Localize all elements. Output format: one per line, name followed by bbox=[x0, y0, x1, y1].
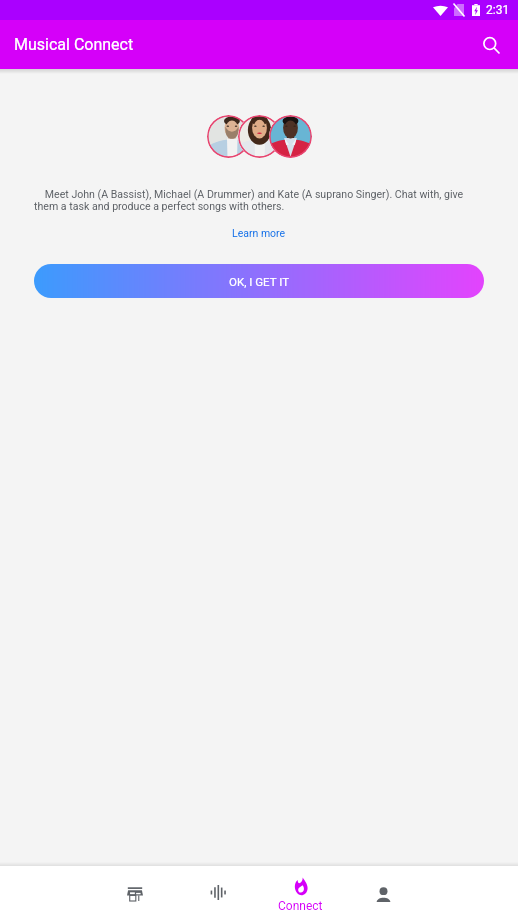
button[interactable]: Connect bbox=[259, 866, 342, 922]
button[interactable]: Profile bbox=[342, 866, 425, 922]
button[interactable]: Profile 2 bbox=[238, 115, 281, 158]
button[interactable]: OK, I GET IT bbox=[34, 264, 484, 298]
staticText: OK, I GET IT bbox=[229, 275, 290, 288]
staticText: 2:31 bbox=[486, 3, 510, 17]
button[interactable]: Store bbox=[93, 866, 176, 922]
staticText: Musical Connect bbox=[14, 35, 134, 54]
staticText: Learn more bbox=[232, 227, 286, 239]
button[interactable]: Profile 1 bbox=[207, 115, 250, 158]
button[interactable]: Search bbox=[471, 25, 511, 65]
staticText: Meet John (A Bassist), Michael (A Drumme… bbox=[34, 188, 478, 212]
button[interactable]: Profile 3 bbox=[269, 115, 312, 158]
staticText: Connect bbox=[278, 899, 323, 913]
button[interactable]: Sounds bbox=[176, 866, 259, 922]
button[interactable]: Learn more bbox=[228, 225, 290, 241]
